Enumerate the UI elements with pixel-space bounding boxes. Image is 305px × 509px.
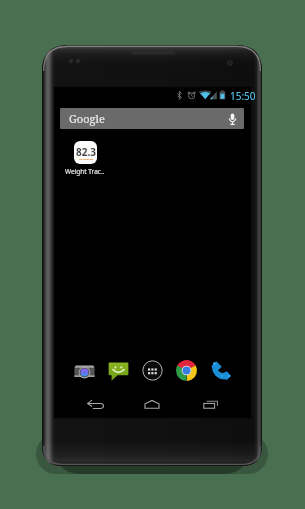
- button[interactable]: Recent apps: [187, 394, 235, 414]
- button[interactable]: Back: [71, 394, 119, 414]
- button[interactable]: Messaging: [106, 358, 131, 383]
- staticText: 82.3: [76, 145, 96, 159]
- button[interactable]: Home: [128, 394, 176, 414]
- button[interactable]: Google: [60, 108, 244, 129]
- button[interactable]: Phone: [208, 358, 233, 383]
- staticText: Google: [69, 111, 105, 126]
- button[interactable]: Chrome: [174, 358, 199, 383]
- button[interactable]: Apps: [140, 358, 165, 383]
- staticText: 15:50: [230, 89, 256, 102]
- button[interactable]: Camera: [72, 358, 97, 383]
- button[interactable]: Voice search: [220, 108, 244, 129]
- staticText: KILOGRAMS: [79, 157, 94, 160]
- staticText: Weight Trac..: [65, 167, 105, 176]
- button[interactable]: 82.3: [56, 141, 113, 177]
